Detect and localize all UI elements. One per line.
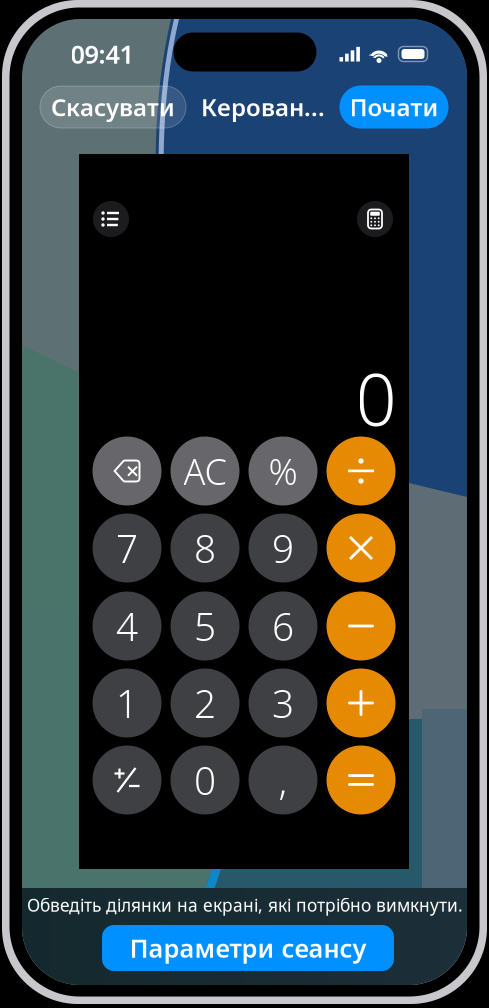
button[interactable]: ,	[248, 745, 317, 814]
staticText: Скасувати	[51, 91, 175, 123]
button[interactable]: Параметри сеансу	[102, 925, 394, 971]
staticText: 3	[272, 677, 294, 729]
button[interactable]	[326, 745, 395, 814]
staticText: 5	[194, 600, 216, 652]
staticText: ,	[278, 754, 287, 806]
staticText: 2	[194, 677, 216, 729]
button[interactable]	[326, 591, 395, 660]
button[interactable]: 3	[248, 668, 317, 737]
button[interactable]: 0	[170, 745, 239, 814]
button[interactable]: Скасувати	[40, 86, 186, 128]
staticText: 0	[355, 350, 396, 446]
button[interactable]: 5	[170, 591, 239, 660]
button[interactable]: AC	[170, 436, 239, 505]
button[interactable]: History	[93, 201, 129, 237]
staticText: AC	[183, 447, 226, 495]
button[interactable]: Почати	[339, 85, 448, 128]
staticText: Керован...	[201, 91, 325, 123]
staticText: 9	[272, 522, 294, 574]
staticText: 8	[194, 522, 216, 574]
button[interactable]: 7	[92, 513, 161, 582]
button[interactable]	[326, 513, 395, 582]
button[interactable]	[92, 745, 161, 814]
staticText: 09:41	[70, 37, 133, 71]
button[interactable]: 6	[248, 591, 317, 660]
button[interactable]: 8	[170, 513, 239, 582]
staticText: 6	[272, 600, 294, 652]
staticText: Параметри сеансу	[129, 931, 366, 965]
button[interactable]	[326, 668, 395, 737]
staticText: %	[268, 447, 297, 495]
button[interactable]	[326, 436, 395, 505]
button[interactable]: 4	[92, 591, 161, 660]
button[interactable]: 9	[248, 513, 317, 582]
staticText: Почати	[349, 91, 438, 123]
button[interactable]: 2	[170, 668, 239, 737]
button[interactable]: Calculator mode	[357, 201, 393, 237]
button[interactable]: %	[248, 436, 317, 505]
staticText: Обведіть ділянки на екрані, які потрібно…	[27, 893, 463, 916]
staticText: 1	[116, 677, 138, 729]
button[interactable]: 1	[92, 668, 161, 737]
staticText: 7	[116, 522, 138, 574]
button[interactable]	[92, 436, 161, 505]
staticText: 0	[194, 754, 216, 806]
staticText: 4	[116, 600, 138, 652]
